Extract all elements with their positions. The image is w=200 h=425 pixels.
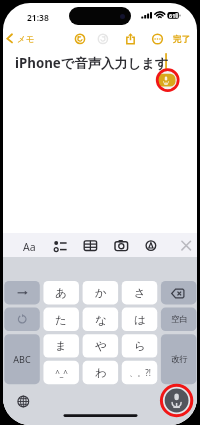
button[interactable]: ま: [43, 334, 79, 357]
button[interactable]: Redo: [97, 31, 109, 43]
staticText: ABC: [13, 353, 31, 365]
button[interactable]: ら: [122, 334, 158, 357]
button[interactable]: Dictate: [163, 387, 190, 414]
button[interactable]: 、。?!: [122, 361, 158, 384]
button[interactable]: あ: [43, 281, 79, 304]
button[interactable]: か: [83, 281, 119, 304]
button[interactable]: 改行: [161, 334, 197, 384]
button[interactable]: た: [43, 308, 79, 331]
staticText: 改行: [171, 354, 188, 365]
staticText: 61: [169, 12, 176, 19]
button[interactable]: Undo: [4, 308, 40, 331]
staticText: か: [95, 286, 107, 300]
button[interactable]: ^_^: [43, 361, 79, 384]
staticText: な: [95, 313, 107, 327]
button[interactable]: Share: [124, 31, 137, 44]
button[interactable]: わ: [83, 361, 119, 384]
button[interactable]: Next candidate: [4, 281, 40, 304]
button[interactable]: Camera: [111, 236, 131, 256]
button[interactable]: ABC: [4, 334, 40, 384]
staticText: 空白: [171, 314, 188, 325]
staticText: Aa: [23, 240, 36, 254]
button[interactable]: Markup: [141, 236, 161, 256]
staticText: あ: [55, 286, 67, 300]
staticText: ま: [55, 339, 67, 353]
button[interactable]: Delete: [161, 281, 197, 304]
button[interactable]: Switch keyboard: [13, 391, 34, 412]
button[interactable]: は: [122, 308, 158, 331]
button[interactable]: Back to メモ: [4, 29, 36, 49]
staticText: わ: [95, 366, 107, 380]
button[interactable]: Undo: [74, 31, 86, 43]
staticText: 、。?!: [129, 367, 151, 378]
button[interactable]: な: [83, 308, 119, 331]
button[interactable]: Text format: [20, 236, 40, 256]
button[interactable]: や: [83, 334, 119, 357]
staticText: た: [55, 313, 67, 327]
button[interactable]: Checklist: [50, 236, 70, 256]
staticText: 完了: [173, 34, 190, 45]
button[interactable]: Close keyboard: [176, 236, 196, 256]
button[interactable]: 空白: [161, 308, 197, 331]
staticText: は: [134, 313, 146, 327]
button[interactable]: Table: [80, 236, 100, 256]
button[interactable]: Dictation: [157, 72, 176, 88]
staticText: さ: [134, 286, 146, 300]
staticText: iPhoneで音声入力します: [15, 54, 169, 72]
staticText: ら: [134, 339, 146, 353]
button[interactable]: More options: [151, 31, 164, 44]
staticText: メモ: [17, 34, 35, 45]
staticText: や: [95, 339, 107, 353]
staticText: 21:38: [27, 12, 49, 24]
button[interactable]: Done: [170, 29, 194, 49]
button[interactable]: さ: [122, 281, 158, 304]
staticText: ^_^: [55, 367, 68, 378]
